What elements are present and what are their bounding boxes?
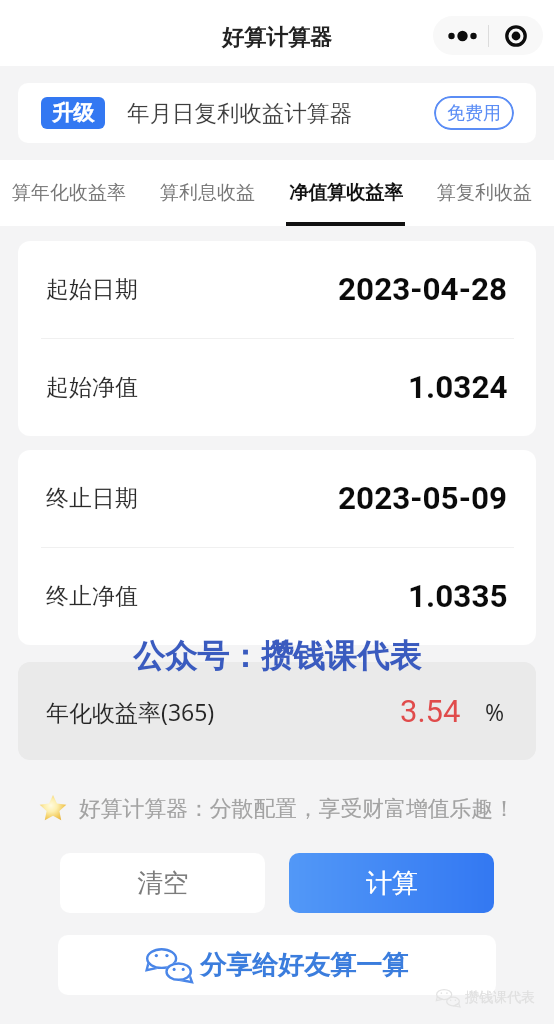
button[interactable]: 算利息收益 (138, 160, 276, 226)
staticText: 起始日期 (46, 275, 138, 304)
button[interactable]: More options (433, 16, 488, 55)
staticText: 年化收益率(365) (46, 696, 215, 727)
staticText: 2023-04-28 (338, 271, 508, 308)
staticText: 攒钱课代表 (465, 989, 535, 1007)
button[interactable]: 算复利收益 (415, 160, 554, 226)
staticText: 算利息收益 (160, 181, 255, 205)
staticText: 算年化收益率 (12, 181, 126, 205)
button[interactable]: 算年化收益率 (0, 160, 138, 226)
staticText: 2023-05-09 (338, 480, 508, 517)
staticText: 好算计算器：分散配置，享受财富增值乐趣！ (79, 795, 515, 822)
staticText: 计算 (366, 867, 418, 900)
button[interactable]: 终止净值 (18, 548, 536, 645)
button[interactable]: 分享给好友算一算 (58, 935, 496, 995)
button[interactable]: 清空 (60, 853, 265, 913)
staticText: 清空 (137, 867, 189, 900)
button[interactable]: 起始净值 (18, 339, 536, 436)
staticText: 1.0335 (408, 578, 508, 615)
staticText: 升级 (52, 100, 94, 126)
staticText: 起始净值 (46, 373, 138, 402)
button[interactable]: 计算 (289, 853, 494, 913)
button[interactable]: 升级 (18, 83, 536, 143)
button[interactable]: 起始日期 (18, 241, 536, 338)
staticText: 净值算收益率 (289, 181, 403, 205)
staticText: 公众号：攒钱课代表 (133, 636, 421, 676)
staticText: 分享给好友算一算 (200, 949, 408, 982)
staticText: 1.0324 (408, 369, 508, 406)
staticText: 算复利收益 (437, 181, 532, 205)
staticText: 终止净值 (46, 582, 138, 611)
button[interactable]: 终止日期 (18, 450, 536, 547)
button[interactable]: Close (489, 16, 543, 55)
staticText: 年月日复利收益计算器 (127, 99, 352, 127)
staticText: 免费用 (447, 102, 501, 125)
staticText: 3.54 (400, 693, 461, 729)
staticText: % (485, 696, 505, 727)
staticText: 好算计算器 (222, 24, 332, 52)
staticText: 终止日期 (46, 484, 138, 513)
button[interactable]: 净值算收益率 (276, 160, 415, 226)
